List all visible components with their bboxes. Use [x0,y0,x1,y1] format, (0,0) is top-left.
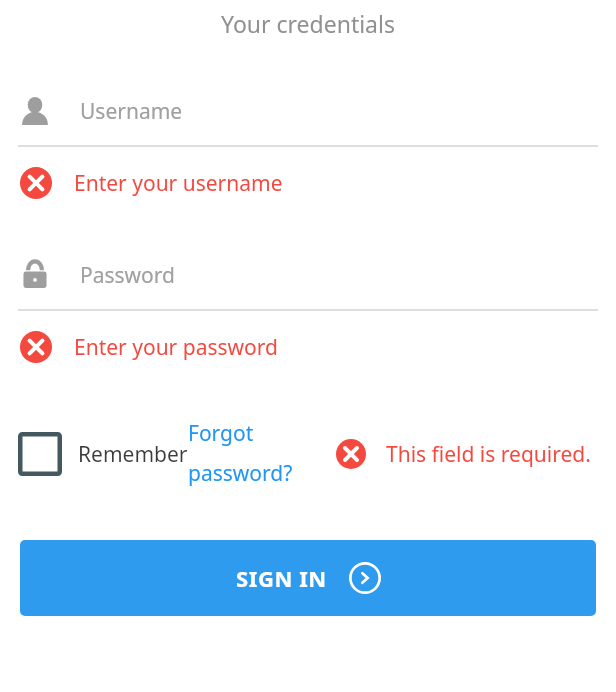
staticText: SIGN IN [236,563,327,593]
button[interactable]: Remember [18,432,188,476]
staticText: Remember [78,440,188,469]
staticText: This field is required. [386,440,591,469]
staticText: Forgot password? [188,419,306,488]
staticText: Your credentials [0,8,616,39]
button[interactable]: Username [18,89,582,133]
staticText: Enter your password [74,333,278,362]
other: Sign in [349,562,381,594]
button[interactable]: Password [18,253,582,297]
button[interactable]: SIGN IN [20,540,596,616]
staticText: Enter your username [74,169,283,198]
button[interactable]: Forgot password? [188,419,306,488]
staticText: Password [80,261,175,290]
staticText: Username [80,97,183,126]
